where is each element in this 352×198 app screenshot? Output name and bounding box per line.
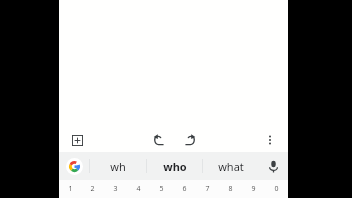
button[interactable]: 1 — [59, 180, 81, 198]
button[interactable]: More options — [260, 130, 280, 150]
staticText: 5 — [159, 184, 164, 194]
button[interactable]: 3 — [104, 180, 127, 198]
button[interactable]: 7 — [196, 180, 219, 198]
staticText: 2 — [90, 184, 95, 194]
button[interactable]: wh — [90, 152, 146, 180]
button[interactable]: 2 — [81, 180, 104, 198]
button[interactable]: 5 — [150, 180, 173, 198]
button[interactable]: Undo — [148, 129, 170, 151]
button[interactable]: 4 — [127, 180, 150, 198]
staticText: 1 — [68, 184, 73, 194]
button[interactable]: Redo — [179, 129, 201, 151]
staticText: wh — [110, 159, 126, 174]
staticText: 8 — [228, 184, 233, 194]
button[interactable]: 0 — [265, 180, 288, 198]
button[interactable]: Google search — [59, 152, 89, 180]
button[interactable]: Voice input — [258, 152, 288, 180]
staticText: what — [218, 159, 244, 174]
staticText: 4 — [136, 184, 141, 194]
staticText: 0 — [274, 184, 279, 194]
button[interactable]: 6 — [173, 180, 196, 198]
button[interactable]: 9 — [242, 180, 265, 198]
button[interactable]: what — [203, 152, 258, 180]
button[interactable]: Insert — [67, 130, 87, 150]
staticText: 9 — [251, 184, 256, 194]
button[interactable]: who — [147, 152, 202, 180]
staticText: 7 — [205, 184, 210, 194]
staticText: 3 — [113, 184, 118, 194]
staticText: who — [163, 159, 187, 174]
staticText: 6 — [182, 184, 187, 194]
button[interactable]: 8 — [219, 180, 242, 198]
